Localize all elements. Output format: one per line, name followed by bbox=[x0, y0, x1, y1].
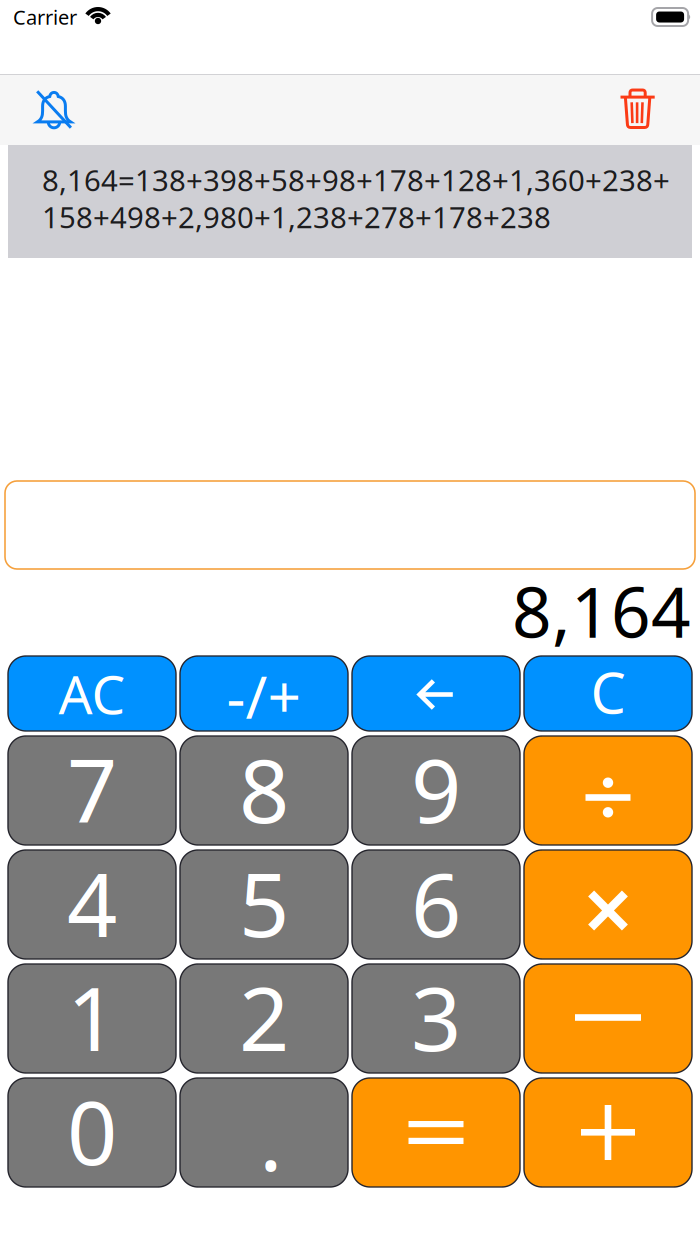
staticText: Carrier bbox=[13, 3, 77, 31]
button[interactable]: 3 bbox=[352, 964, 520, 1073]
button[interactable]: 0 bbox=[8, 1078, 176, 1187]
staticText: 2 bbox=[239, 957, 289, 1066]
button[interactable]: 9 bbox=[352, 736, 520, 845]
staticText: AC bbox=[58, 657, 125, 730]
staticText: 6 bbox=[411, 843, 461, 952]
button[interactable]: Mute bbox=[0, 74, 108, 145]
staticText: 0 bbox=[67, 1071, 117, 1180]
staticText: 8,164=138+398+58+98+178+128+1,360+238+15… bbox=[42, 160, 670, 237]
button[interactable]: C bbox=[524, 656, 692, 731]
button[interactable]: Add bbox=[524, 1078, 692, 1187]
staticText: 7 bbox=[67, 729, 117, 838]
button[interactable]: 8 bbox=[180, 736, 348, 845]
staticText: C bbox=[590, 654, 625, 729]
button[interactable]: AC bbox=[8, 656, 176, 731]
button[interactable]: Multiply bbox=[524, 850, 692, 959]
button[interactable]: 7 bbox=[8, 736, 176, 845]
button[interactable]: Backspace bbox=[352, 656, 520, 731]
staticText: . bbox=[259, 1077, 283, 1186]
button[interactable]: Equals bbox=[352, 1078, 520, 1187]
button[interactable]: 6 bbox=[352, 850, 520, 959]
button[interactable]: Divide bbox=[524, 736, 692, 845]
staticText: 8 bbox=[239, 729, 289, 838]
staticText: 9 bbox=[411, 729, 461, 838]
button[interactable]: 5 bbox=[180, 850, 348, 959]
staticText: -/+ bbox=[226, 656, 301, 731]
button[interactable]: 2 bbox=[180, 964, 348, 1073]
staticText: 3 bbox=[411, 957, 461, 1066]
button[interactable]: 1 bbox=[8, 964, 176, 1073]
staticText: 4 bbox=[67, 843, 117, 952]
button[interactable]: 4 bbox=[8, 850, 176, 959]
staticText: 5 bbox=[239, 843, 289, 952]
staticText: 1 bbox=[67, 957, 117, 1066]
button[interactable]: Clear history bbox=[576, 74, 700, 145]
button[interactable]: Subtract bbox=[524, 964, 692, 1073]
button[interactable]: -/+ bbox=[180, 656, 348, 731]
button[interactable]: . bbox=[180, 1078, 348, 1187]
staticText: 8,164 bbox=[512, 564, 691, 658]
